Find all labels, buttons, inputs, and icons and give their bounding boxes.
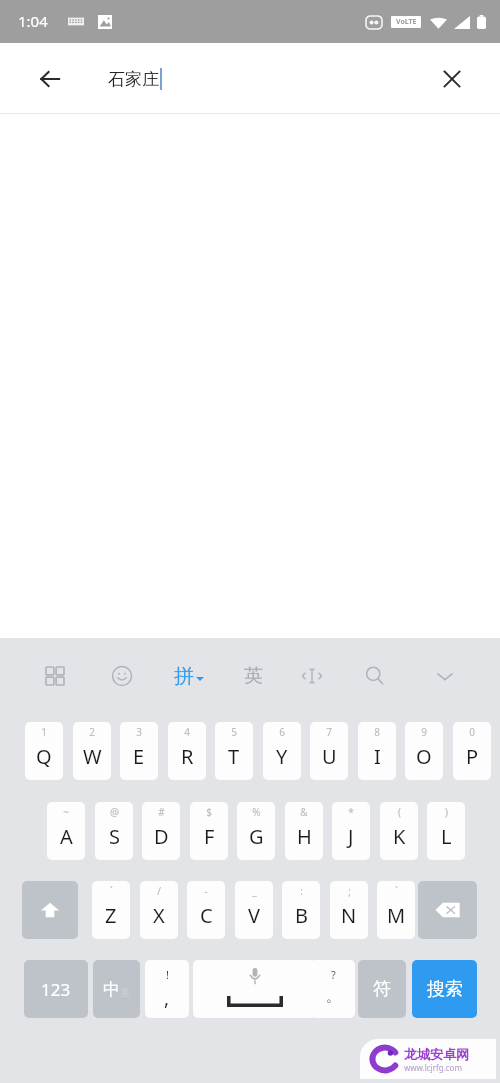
staticText: 英 (120, 986, 130, 999)
staticText: : (300, 884, 303, 898)
button[interactable]: 3 (120, 722, 158, 780)
staticText: _ (252, 884, 257, 898)
staticText: 符 (373, 978, 391, 1001)
button[interactable]: Clear (432, 59, 472, 99)
staticText: L (441, 823, 452, 850)
staticText: 9 (421, 725, 427, 739)
staticText: * (348, 805, 354, 819)
button[interactable]: ´ (92, 881, 130, 939)
button[interactable]: # (142, 802, 180, 860)
button[interactable]: 4 (168, 722, 206, 780)
button[interactable]: 123 (24, 960, 88, 1018)
staticText: 英 (244, 664, 263, 688)
staticText: 。 (326, 988, 340, 1006)
button[interactable]: 0 (453, 722, 491, 780)
staticText: ~ (63, 805, 69, 819)
staticText: K (393, 823, 406, 850)
staticText: & (300, 805, 308, 819)
button[interactable]: Shift (22, 881, 78, 939)
staticText: # (158, 805, 165, 819)
staticText: J (348, 823, 354, 850)
button[interactable]: ? (311, 960, 355, 1018)
button[interactable]: @ (95, 802, 133, 860)
staticText: ` (395, 884, 398, 898)
button[interactable]: 搜索 (412, 960, 477, 1018)
button[interactable]: Space (193, 960, 316, 1018)
button[interactable]: % (237, 802, 275, 860)
staticText: - (204, 884, 208, 898)
staticText: ; (348, 884, 351, 898)
staticText: 石家庄 (108, 69, 159, 90)
button[interactable]: / (140, 881, 178, 939)
staticText: 8 (374, 725, 380, 739)
staticText: % (252, 805, 261, 819)
staticText: D (154, 823, 169, 850)
button[interactable]: Back (30, 59, 70, 99)
button[interactable]: ; (330, 881, 368, 939)
staticText: 7 (326, 725, 332, 739)
button[interactable]: Move cursor (296, 654, 328, 698)
staticText: F (204, 823, 215, 850)
staticText: ? (331, 967, 336, 982)
staticText: I (374, 743, 381, 770)
button[interactable]: Search (359, 654, 391, 698)
button[interactable]: 5 (215, 722, 253, 780)
staticText: $ (206, 805, 212, 819)
staticText: @ (110, 805, 119, 819)
button[interactable]: ! (145, 960, 189, 1018)
button[interactable]: ) (427, 802, 465, 860)
staticText: 5 (231, 725, 237, 739)
button[interactable]: & (285, 802, 323, 860)
button[interactable]: Emoji (106, 654, 138, 698)
staticText: M (387, 902, 406, 929)
staticText: 0 (469, 725, 475, 739)
button[interactable]: Hide keyboard (429, 654, 461, 698)
staticText: 搜索 (427, 978, 463, 1001)
staticText: H (297, 823, 312, 850)
button[interactable]: 8 (358, 722, 396, 780)
button[interactable]: 拼 (174, 654, 204, 698)
button[interactable]: * (332, 802, 370, 860)
button[interactable]: 9 (405, 722, 443, 780)
staticText: O (416, 743, 432, 770)
button[interactable]: - (187, 881, 225, 939)
staticText: U (322, 743, 337, 770)
staticText: Q (36, 743, 52, 770)
staticText: ( (398, 805, 401, 819)
staticText: 中 (103, 979, 120, 1000)
staticText: 6 (279, 725, 285, 739)
staticText: S (109, 823, 120, 850)
staticText: P (466, 743, 479, 770)
button[interactable]: 7 (310, 722, 348, 780)
button[interactable]: 英 (238, 654, 268, 698)
staticText: T (228, 743, 240, 770)
staticText: , (164, 985, 170, 1011)
staticText: ! (166, 967, 169, 982)
staticText: A (60, 823, 73, 850)
staticText: 3 (136, 725, 142, 739)
staticText: 拼 (174, 664, 194, 689)
button[interactable]: Keyboard layouts (39, 654, 71, 698)
staticText: 1:04 (18, 11, 48, 31)
button[interactable]: ~ (47, 802, 85, 860)
staticText: C (200, 902, 213, 929)
staticText: R (181, 743, 194, 770)
staticText: E (133, 743, 145, 770)
button[interactable]: ( (380, 802, 418, 860)
button[interactable]: 2 (73, 722, 111, 780)
button[interactable]: : (282, 881, 320, 939)
button[interactable]: 中 (93, 960, 140, 1018)
button[interactable]: 6 (263, 722, 301, 780)
button[interactable]: 符 (358, 960, 406, 1018)
staticText: / (157, 884, 161, 898)
staticText: X (153, 902, 165, 929)
staticText: ) (445, 805, 448, 819)
button[interactable]: ` (377, 881, 415, 939)
staticText: 123 (41, 978, 71, 1001)
staticText: N (341, 902, 357, 929)
button[interactable]: $ (190, 802, 228, 860)
button[interactable]: Backspace (418, 881, 477, 939)
button[interactable]: _ (235, 881, 273, 939)
staticText: Y (276, 743, 288, 770)
button[interactable]: 1 (25, 722, 63, 780)
